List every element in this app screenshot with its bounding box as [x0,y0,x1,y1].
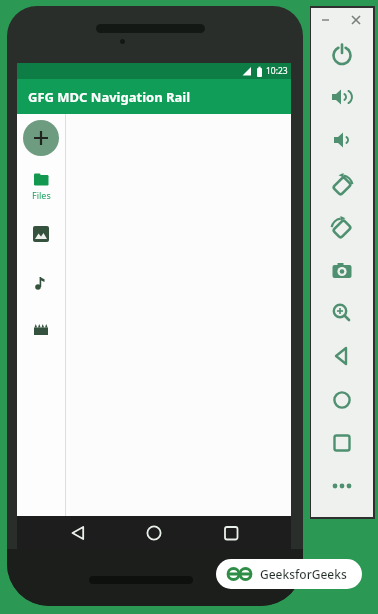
staticText: 10:23 [266,65,288,77]
button[interactable]: Files [17,172,65,201]
staticText: GFG MDC Navigation Rail [28,88,191,106]
button[interactable] [331,345,353,367]
button[interactable] [331,216,353,238]
button[interactable] [331,129,353,151]
button[interactable]: GeeksforGeeks [216,559,362,589]
button[interactable] [331,302,353,324]
staticText: GeeksforGeeks [260,566,347,582]
button[interactable] [331,475,353,497]
button[interactable] [331,389,353,411]
button[interactable] [350,14,362,26]
button[interactable] [70,525,86,541]
button[interactable] [34,274,48,290]
button[interactable] [33,226,49,242]
button[interactable] [331,173,353,195]
button[interactable] [331,432,353,454]
button[interactable] [331,259,353,281]
button[interactable] [331,43,353,65]
button[interactable] [331,86,353,108]
button[interactable] [146,525,162,541]
staticText: Files [32,189,51,201]
button[interactable] [23,120,59,156]
button[interactable] [34,324,48,335]
button[interactable] [223,525,239,541]
